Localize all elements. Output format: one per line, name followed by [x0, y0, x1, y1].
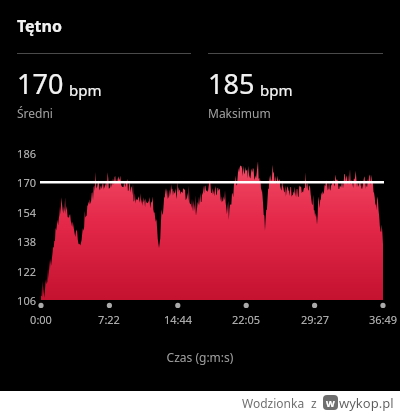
staticText: 154: [0, 205, 36, 220]
staticText: 122: [0, 264, 36, 279]
staticText: 7:22: [79, 312, 139, 327]
staticText: 0:00: [11, 312, 71, 327]
staticText: 138: [0, 234, 36, 249]
staticText: 22:05: [216, 312, 276, 327]
staticText: W: [326, 397, 335, 409]
staticText: Maksimum: [208, 105, 271, 121]
staticText: 170: [0, 175, 36, 190]
staticText: Czas (g:m:s): [0, 349, 400, 365]
staticText: 186: [0, 146, 36, 161]
button[interactable]: Tętno: [17, 15, 62, 37]
staticText: 36:49: [353, 312, 400, 327]
staticText: bpm: [69, 80, 102, 100]
staticText: wykop.pl: [339, 394, 394, 412]
staticText: 29:27: [285, 312, 345, 327]
button[interactable]: 185: [208, 53, 383, 121]
staticText: Wodzionka: [242, 395, 305, 411]
other: wykop.pl logo: [323, 395, 338, 410]
button[interactable]: 170: [17, 53, 191, 121]
staticText: 14:44: [148, 312, 208, 327]
staticText: Średni: [17, 105, 53, 121]
staticText: 170: [17, 65, 64, 102]
staticText: z: [311, 395, 317, 411]
staticText: 106: [0, 293, 36, 308]
staticText: bpm: [260, 80, 293, 100]
staticText: 185: [208, 65, 255, 102]
